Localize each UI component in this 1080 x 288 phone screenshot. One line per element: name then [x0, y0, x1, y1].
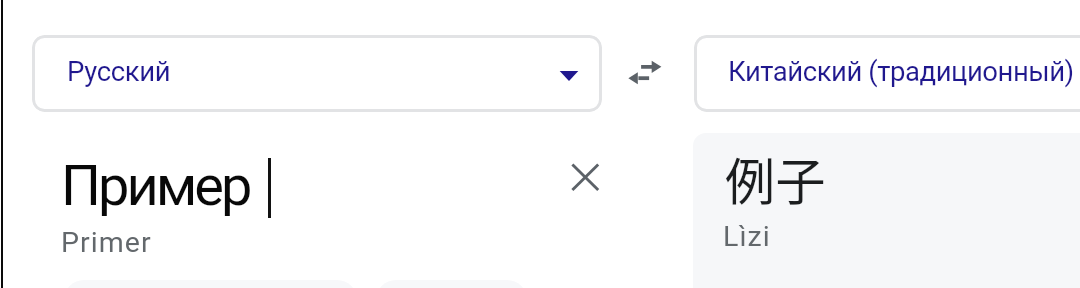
staticText: Primer — [61, 226, 152, 259]
button[interactable]: 例子 — [693, 133, 1080, 288]
button[interactable]: Пример — [32, 132, 552, 272]
button[interactable]: Русский — [32, 35, 602, 112]
staticText: Русский — [67, 55, 171, 87]
staticText: Пример — [61, 153, 250, 219]
staticText: Китайский (традиционный) — [728, 55, 1074, 87]
button[interactable]: Китайский (традиционный) — [694, 35, 1080, 112]
staticText: 例子 — [725, 142, 827, 214]
staticText: Lìzi — [723, 220, 771, 253]
button[interactable]: Clear text — [556, 148, 614, 206]
button[interactable]: Swap languages — [618, 50, 672, 95]
